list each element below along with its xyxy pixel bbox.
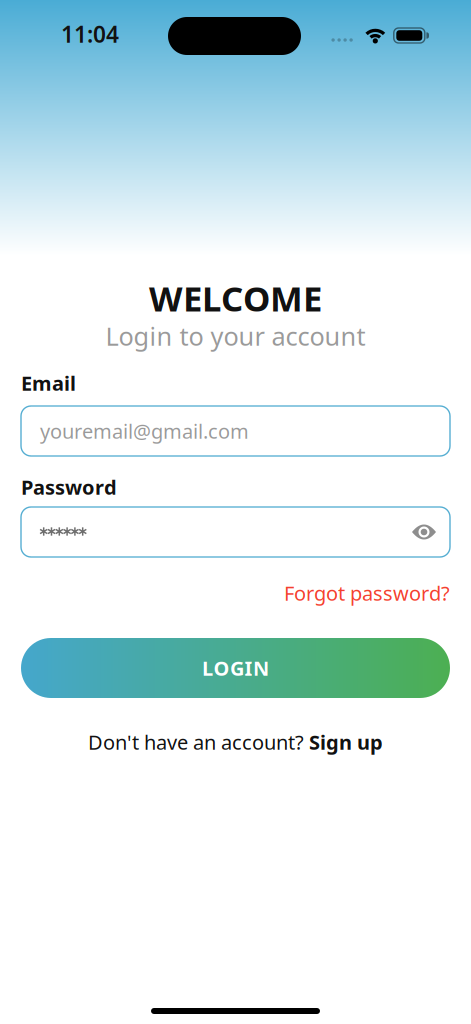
button[interactable]: LOGIN <box>21 638 450 698</box>
button[interactable]: Show password <box>412 524 436 539</box>
staticText: LOGIN <box>202 655 269 681</box>
staticText: Don't have an account? <box>88 729 309 755</box>
staticText: youremail@gmail.com <box>40 418 249 444</box>
staticText: WELCOME <box>149 275 322 321</box>
staticText: Login to your account <box>105 319 365 353</box>
staticText: 11:04 <box>61 19 119 49</box>
button[interactable]: youremail@gmail.com <box>21 406 450 456</box>
staticText: Password <box>21 474 117 500</box>
button[interactable]: Sign up <box>309 729 383 755</box>
button[interactable]: Forgot password? <box>284 580 450 606</box>
staticText: Forgot password? <box>284 580 450 606</box>
staticText: Email <box>21 370 76 396</box>
button[interactable] <box>21 507 450 557</box>
staticText: Sign up <box>309 729 383 755</box>
